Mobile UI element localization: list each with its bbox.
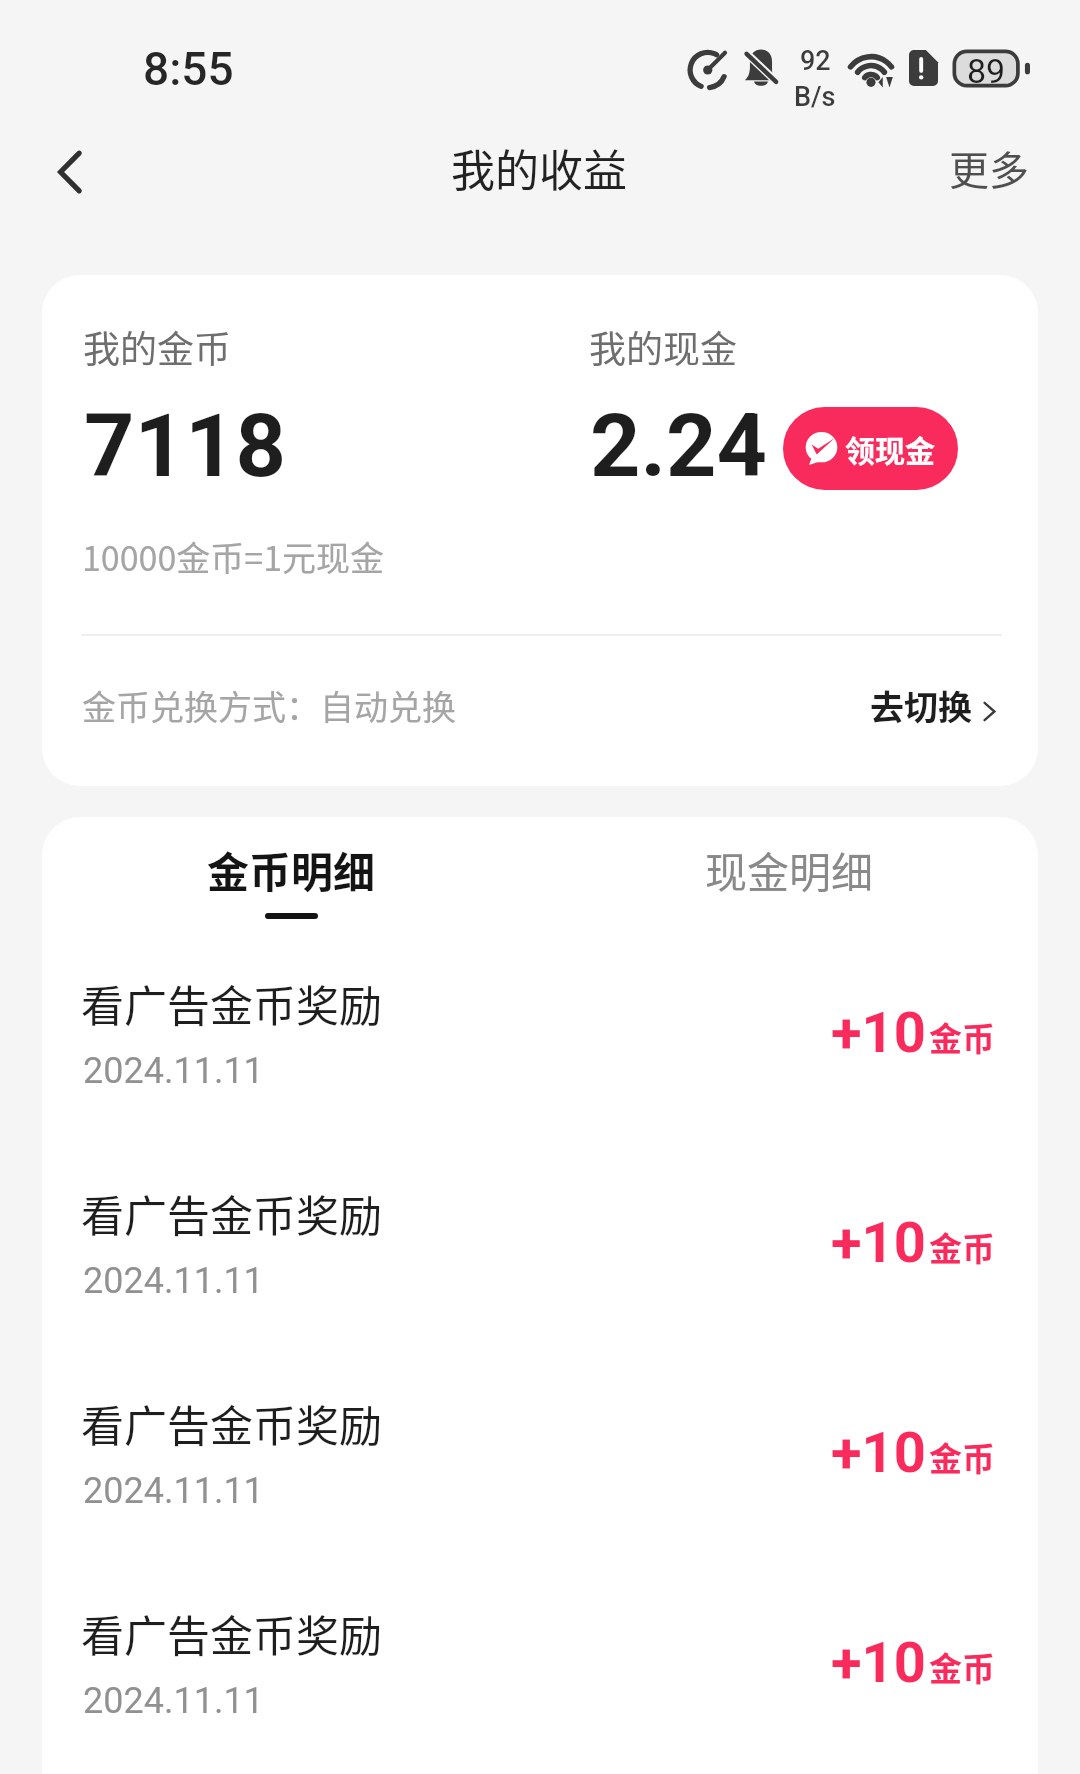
button[interactable]: 更多 bbox=[929, 128, 1049, 208]
staticText: 领现金 bbox=[845, 427, 935, 470]
staticText: +10 bbox=[831, 1420, 926, 1486]
staticText: +10 bbox=[831, 1630, 926, 1696]
staticText: 金币明细 bbox=[207, 839, 376, 900]
staticText: 2024.11.11 bbox=[83, 1260, 264, 1302]
button[interactable]: 领现金 bbox=[783, 407, 958, 490]
button[interactable]: 看广告金币奖励 bbox=[42, 1157, 1038, 1367]
button[interactable]: Back bbox=[24, 128, 116, 216]
staticText: 我的收益 bbox=[451, 136, 627, 200]
button[interactable]: 看广告金币奖励 bbox=[42, 1367, 1038, 1577]
staticText: 2024.11.11 bbox=[83, 1050, 264, 1092]
staticText: +10 bbox=[831, 1210, 926, 1276]
staticText: 现金明细 bbox=[705, 839, 874, 900]
staticText: 10000金币=1元现金 bbox=[82, 532, 385, 581]
staticText: 92 bbox=[800, 45, 831, 77]
staticText: 金币 bbox=[929, 1013, 995, 1061]
staticText: 2.24 bbox=[590, 394, 767, 497]
staticText: 我的现金 bbox=[589, 320, 737, 374]
button[interactable]: 金币兑换方式：自动兑换 bbox=[42, 636, 1038, 786]
staticText: 金币 bbox=[929, 1433, 995, 1481]
staticText: 更多 bbox=[949, 139, 1029, 197]
staticText: +10 bbox=[831, 1000, 926, 1066]
staticText: 去切换 bbox=[870, 681, 972, 730]
button[interactable]: 看广告金币奖励 bbox=[42, 947, 1038, 1157]
staticText: 我的金币 bbox=[83, 320, 231, 374]
button[interactable]: 现金明细 bbox=[662, 817, 916, 947]
staticText: 金币 bbox=[929, 1223, 995, 1271]
staticText: 金币 bbox=[929, 1643, 995, 1691]
staticText: 89 bbox=[967, 51, 1006, 90]
staticText: 2024.11.11 bbox=[83, 1470, 264, 1512]
button[interactable]: 看广告金币奖励 bbox=[42, 1577, 1038, 1774]
staticText: B/s bbox=[794, 81, 836, 113]
staticText: 8:55 bbox=[143, 42, 234, 96]
staticText: 2024.11.11 bbox=[83, 1680, 264, 1722]
staticText: 看广告金币奖励 bbox=[81, 1392, 382, 1454]
staticText: 看广告金币奖励 bbox=[81, 1602, 382, 1664]
staticText: 看广告金币奖励 bbox=[81, 1182, 382, 1244]
staticText: 金币兑换方式：自动兑换 bbox=[82, 681, 456, 730]
button[interactable]: 金币明细 bbox=[164, 817, 418, 947]
staticText: 7118 bbox=[84, 394, 286, 497]
staticText: 看广告金币奖励 bbox=[81, 972, 382, 1034]
